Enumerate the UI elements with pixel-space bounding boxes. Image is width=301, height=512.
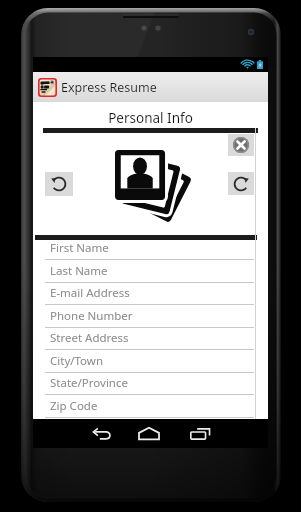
button[interactable]: State/Province (45, 372, 254, 395)
staticText: City/Town (50, 353, 103, 369)
staticText: Street Address (50, 330, 129, 346)
staticText: Zip Code (50, 398, 98, 414)
button[interactable]: E-mail Address (45, 282, 254, 305)
button[interactable]: First Name (45, 237, 254, 260)
button[interactable]: City/Town (45, 350, 254, 373)
staticText: State/Province (50, 375, 128, 391)
button[interactable]: Home (128, 419, 170, 448)
button[interactable]: Zip Code (45, 395, 254, 418)
staticText: Last Name (50, 263, 108, 279)
staticText: Personal Info (33, 109, 268, 127)
button[interactable]: Last Name (45, 260, 254, 283)
button[interactable]: Rotate right (228, 172, 254, 195)
button[interactable]: Rotate left (45, 172, 73, 196)
button[interactable]: Street Address (45, 327, 254, 350)
staticText: Phone Number (50, 308, 133, 324)
staticText: Express Resume (61, 79, 157, 96)
button[interactable]: Express Resume (33, 72, 268, 102)
staticText: E-mail Address (50, 285, 130, 301)
button[interactable]: Remove photo (228, 134, 254, 156)
button[interactable]: Phone Number (45, 305, 254, 328)
button[interactable]: Back (81, 419, 123, 448)
staticText: First Name (50, 240, 109, 256)
button[interactable]: Recents (179, 419, 221, 448)
